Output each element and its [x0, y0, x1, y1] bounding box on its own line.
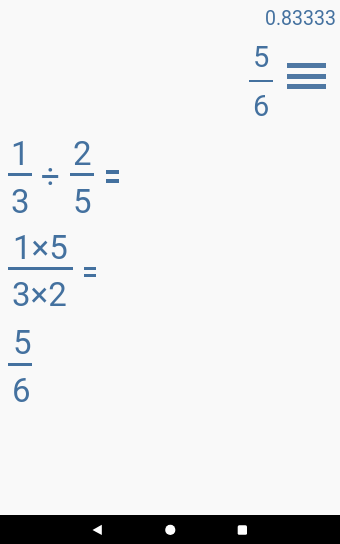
- button[interactable]: [88, 520, 107, 539]
- staticText: 3: [11, 182, 30, 221]
- button[interactable]: [282, 58, 330, 94]
- staticText: 3×2: [12, 275, 67, 314]
- staticText: 1×5: [13, 228, 68, 267]
- staticText: 6: [253, 89, 270, 123]
- staticText: 5: [73, 182, 92, 221]
- staticText: 2: [73, 134, 92, 173]
- staticText: ÷: [41, 157, 60, 196]
- staticText: 5: [13, 323, 32, 362]
- button[interactable]: [233, 520, 252, 539]
- button[interactable]: [160, 520, 180, 539]
- staticText: 5: [253, 40, 270, 74]
- staticText: 6: [12, 371, 31, 410]
- staticText: 0.83333: [265, 7, 336, 30]
- button[interactable]: [230, 38, 294, 122]
- staticText: 1: [11, 134, 30, 173]
